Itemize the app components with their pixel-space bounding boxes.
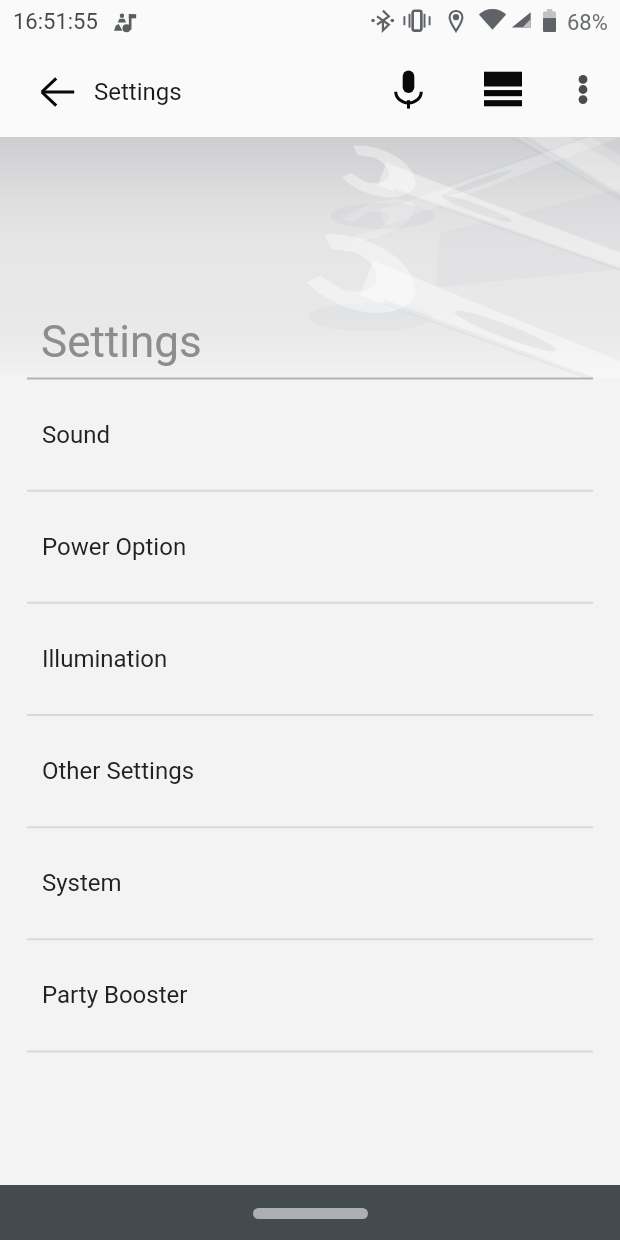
staticText: System [42, 869, 122, 897]
button[interactable]: Sound [0, 378, 620, 490]
button[interactable]: Change view layout [472, 58, 534, 120]
button[interactable]: More options [552, 58, 614, 120]
button[interactable]: Voice search [377, 58, 439, 120]
staticText: 68% [567, 10, 608, 36]
button[interactable]: Other Settings [0, 714, 620, 826]
button[interactable]: Back [27, 61, 89, 123]
button[interactable]: Illumination [0, 602, 620, 714]
staticText: Other Settings [42, 757, 195, 785]
staticText: 16:51:55 [13, 9, 98, 35]
button[interactable]: Power Option [0, 490, 620, 602]
staticText: Illumination [42, 645, 168, 673]
staticText: Settings [94, 78, 182, 106]
button[interactable]: Party Booster [0, 938, 620, 1050]
button[interactable]: System [0, 826, 620, 938]
staticText: Settings [41, 316, 202, 368]
staticText: Sound [42, 421, 110, 449]
staticText: Party Booster [42, 981, 188, 1009]
staticText: Power Option [42, 533, 187, 561]
